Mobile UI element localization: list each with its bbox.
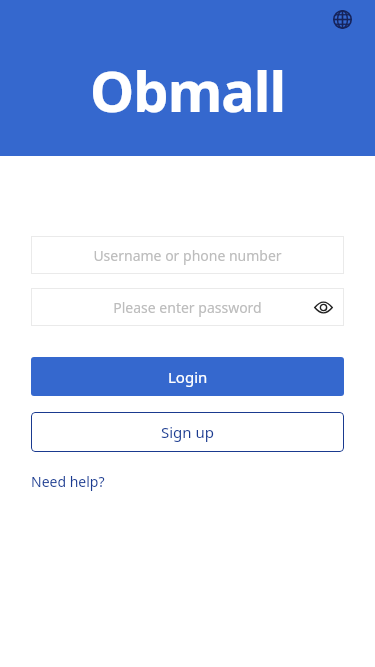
staticText: Need help? bbox=[31, 472, 105, 491]
staticText: Sign up bbox=[161, 422, 214, 442]
button[interactable]: Login bbox=[31, 357, 344, 396]
staticText: Obmall bbox=[90, 52, 286, 128]
button[interactable]: Please enter password bbox=[31, 288, 344, 326]
staticText: Username or phone number bbox=[93, 246, 282, 265]
button[interactable]: Change language bbox=[329, 6, 355, 32]
staticText: Please enter password bbox=[113, 298, 262, 317]
button[interactable]: Username or phone number bbox=[31, 236, 344, 274]
button[interactable]: Show password bbox=[308, 292, 338, 322]
button[interactable]: Sign up bbox=[31, 412, 344, 452]
button[interactable]: Need help? bbox=[31, 469, 105, 493]
staticText: Login bbox=[168, 367, 208, 387]
